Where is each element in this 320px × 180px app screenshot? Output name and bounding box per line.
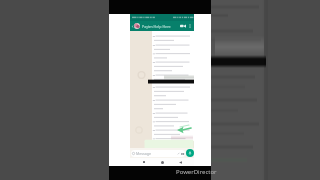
staticText: Paytm Help Here	[142, 24, 171, 29]
staticText: Message	[136, 151, 151, 156]
button[interactable]: Voice message	[186, 149, 194, 157]
button[interactable]: Back	[176, 158, 184, 166]
button[interactable]: Recents	[140, 158, 148, 166]
staticText: PowerDirector	[176, 168, 217, 176]
button[interactable]: Message	[131, 150, 185, 157]
button[interactable]: Back	[130, 21, 134, 31]
button[interactable]: More options	[187, 21, 193, 31]
button[interactable]: Video call	[178, 21, 187, 31]
button[interactable]: Contact photo	[134, 23, 140, 29]
button[interactable]: Home	[158, 158, 166, 166]
